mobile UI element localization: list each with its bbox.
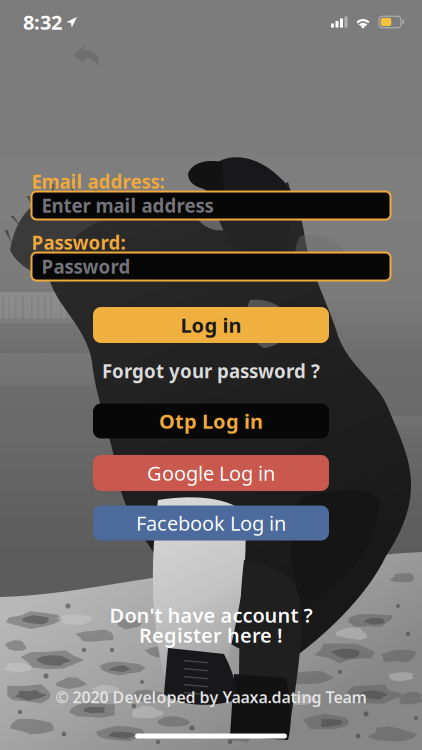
button[interactable]: Google Log in: [93, 455, 329, 491]
button[interactable]: Facebook Log in: [93, 505, 329, 540]
staticText: Forgot your password ?: [102, 359, 320, 383]
button[interactable]: Password: [31, 252, 390, 280]
staticText: © 2020 Developed by Yaaxa.dating Team: [55, 686, 366, 708]
staticText: Password:: [31, 230, 125, 255]
button[interactable]: Otp Log in: [93, 403, 329, 438]
staticText: Don't have account ?: [109, 602, 312, 628]
staticText: 8:32: [23, 9, 62, 35]
staticText: Otp Log in: [159, 408, 263, 434]
staticText: Register here !: [139, 622, 283, 648]
staticText: Password: [41, 254, 130, 279]
button[interactable]: Back: [62, 35, 109, 71]
staticText: Google Log in: [147, 460, 275, 486]
staticText: Log in: [180, 312, 241, 338]
staticText: Enter mail address: [41, 193, 213, 218]
staticText: Email address:: [31, 169, 164, 194]
button[interactable]: Forgot your password ?: [96, 353, 326, 389]
button[interactable]: Enter mail address: [31, 191, 390, 219]
button[interactable]: Log in: [93, 307, 329, 343]
button[interactable]: Don't have account ?: [103, 605, 318, 645]
staticText: Facebook Log in: [136, 510, 286, 536]
